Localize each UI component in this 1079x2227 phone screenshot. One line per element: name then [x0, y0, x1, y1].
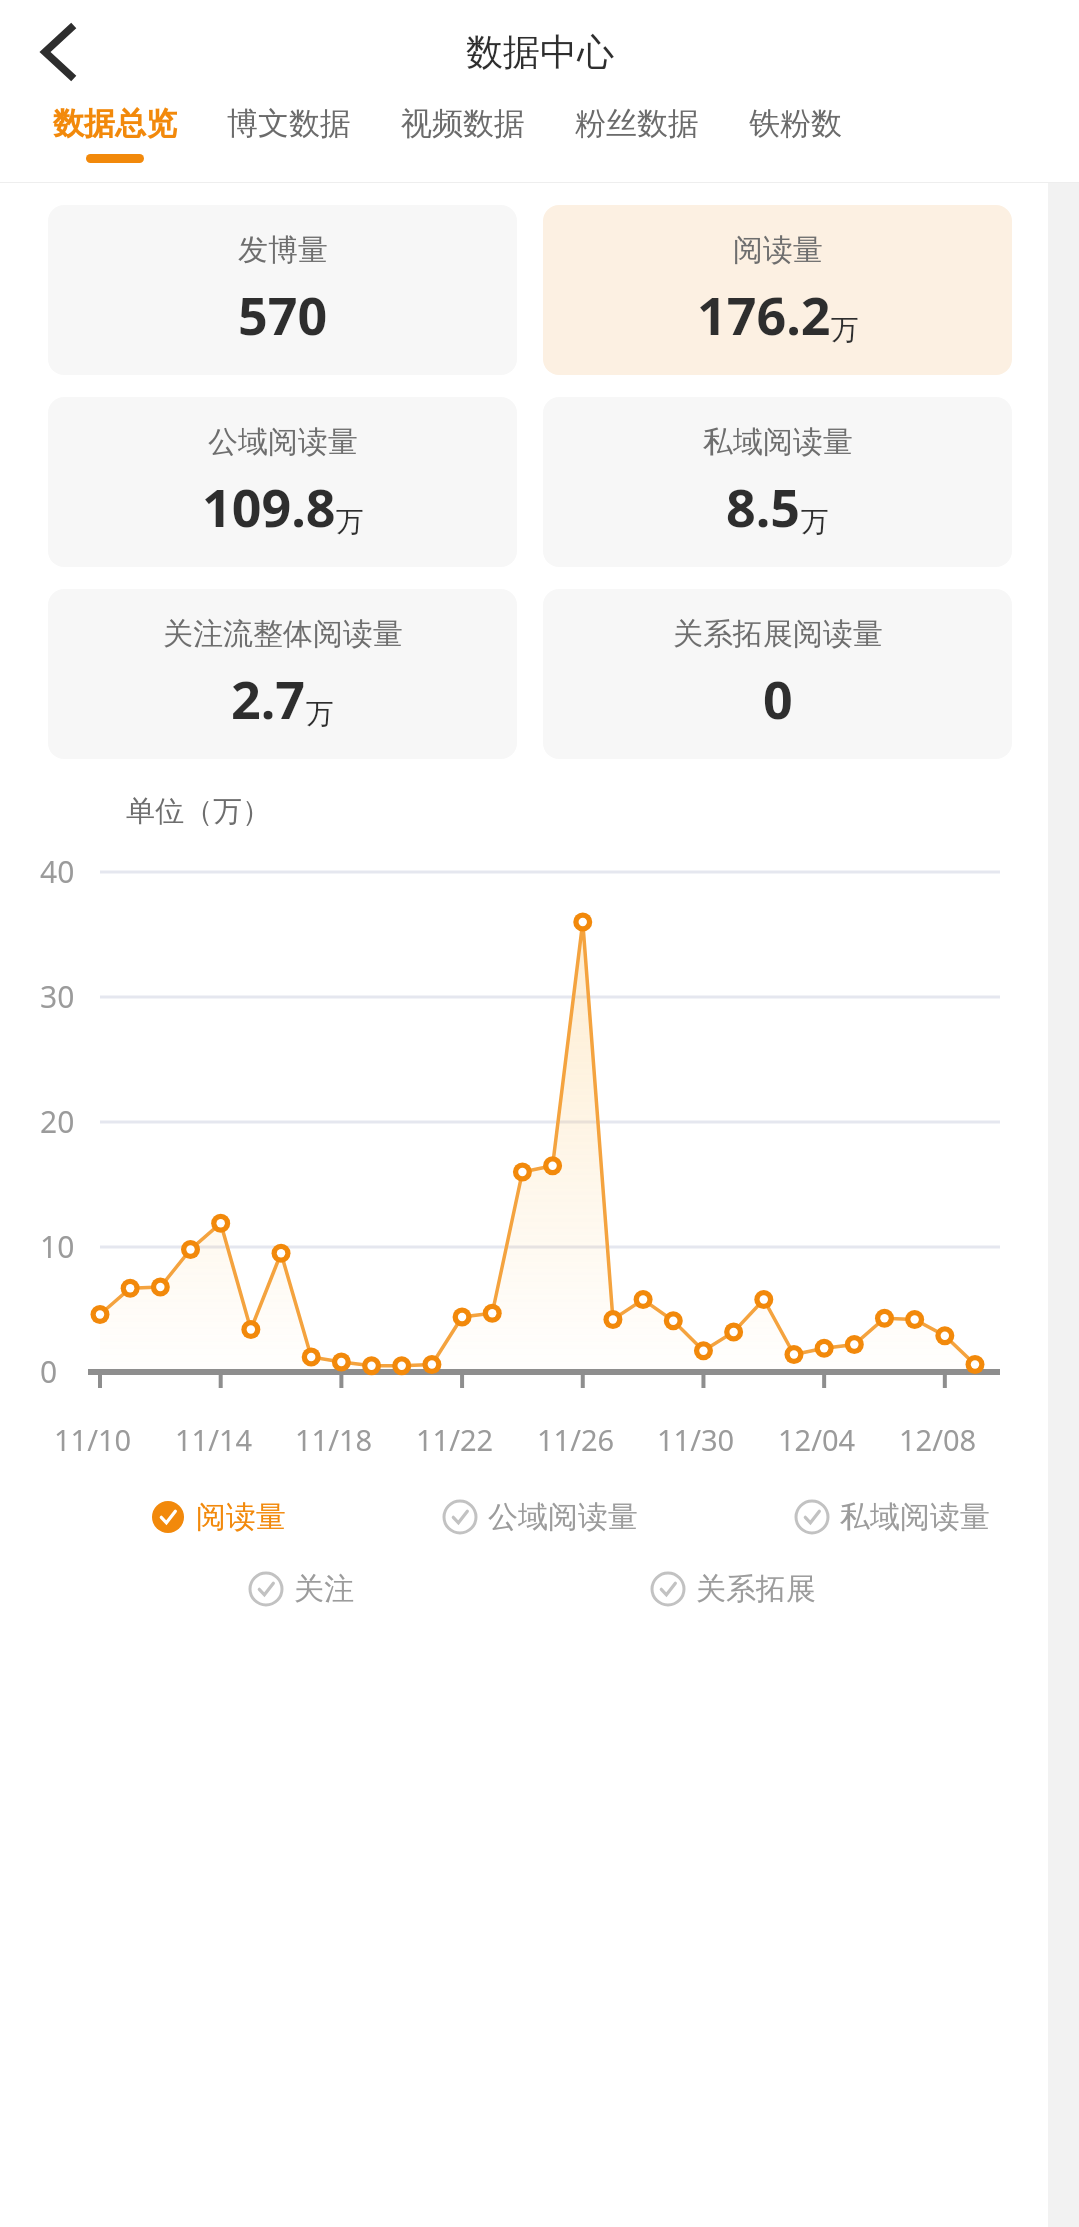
staticText: 单位（万）: [126, 793, 271, 830]
staticText: 关注流整体阅读量: [163, 615, 403, 653]
staticText: 私域阅读量: [703, 423, 853, 461]
staticText: 万: [336, 504, 364, 539]
staticText: 109.8: [202, 471, 336, 542]
staticText: 176.2: [697, 279, 831, 350]
staticText: 关系拓展: [696, 1570, 816, 1608]
staticText: 数据总览: [53, 104, 177, 143]
button[interactable]: 私域阅读量: [794, 1492, 990, 1542]
staticText: 12/08: [899, 1420, 977, 1459]
staticText: 粉丝数据: [575, 104, 699, 143]
button[interactable]: 关系拓展阅读量: [543, 589, 1012, 759]
staticText: 30: [40, 976, 75, 1017]
button[interactable]: 公域阅读量: [442, 1492, 638, 1542]
button[interactable]: 关注: [248, 1564, 354, 1614]
staticText: 万: [306, 696, 334, 731]
button[interactable]: 视频数据: [376, 104, 550, 154]
staticText: 12/04: [778, 1420, 856, 1459]
staticText: 10: [40, 1226, 75, 1267]
staticText: 20: [40, 1101, 75, 1142]
button[interactable]: 博文数据: [202, 104, 376, 154]
button[interactable]: 关注流整体阅读量: [48, 589, 517, 759]
staticText: 阅读量: [733, 231, 823, 269]
button[interactable]: 数据总览: [28, 104, 202, 163]
staticText: 11/30: [657, 1420, 735, 1459]
button[interactable]: 公域阅读量: [48, 397, 517, 567]
staticText: 关注: [294, 1570, 354, 1608]
staticText: 私域阅读量: [840, 1498, 990, 1536]
staticText: 铁粉数: [749, 104, 842, 143]
staticText: 阅读量: [196, 1498, 286, 1536]
button[interactable]: 铁粉数: [724, 104, 867, 154]
staticText: 2.7: [231, 663, 306, 734]
staticText: 公域阅读量: [208, 423, 358, 461]
button[interactable]: 私域阅读量: [543, 397, 1012, 567]
staticText: 视频数据: [401, 104, 525, 143]
button[interactable]: 阅读量: [150, 1492, 286, 1542]
staticText: 11/22: [416, 1420, 494, 1459]
staticText: 万: [831, 312, 859, 347]
staticText: 数据中心: [466, 29, 614, 76]
button[interactable]: 粉丝数据: [550, 104, 724, 154]
staticText: 40: [40, 851, 75, 892]
button[interactable]: 发博量: [48, 205, 517, 375]
staticText: 11/10: [54, 1420, 132, 1459]
staticText: 博文数据: [227, 104, 351, 143]
staticText: 关系拓展阅读量: [673, 615, 883, 653]
staticText: 11/26: [537, 1420, 615, 1459]
staticText: 570: [238, 279, 328, 350]
staticText: 公域阅读量: [488, 1498, 638, 1536]
staticText: 8.5: [726, 471, 801, 542]
button[interactable]: 阅读量: [543, 205, 1012, 375]
staticText: 0: [40, 1351, 58, 1392]
staticText: 0: [763, 663, 793, 734]
button[interactable]: Back: [6, 6, 98, 98]
staticText: 万: [801, 504, 829, 539]
button[interactable]: 关系拓展: [650, 1564, 816, 1614]
staticText: 发博量: [238, 231, 328, 269]
staticText: 11/18: [295, 1420, 373, 1459]
staticText: 11/14: [175, 1420, 253, 1459]
